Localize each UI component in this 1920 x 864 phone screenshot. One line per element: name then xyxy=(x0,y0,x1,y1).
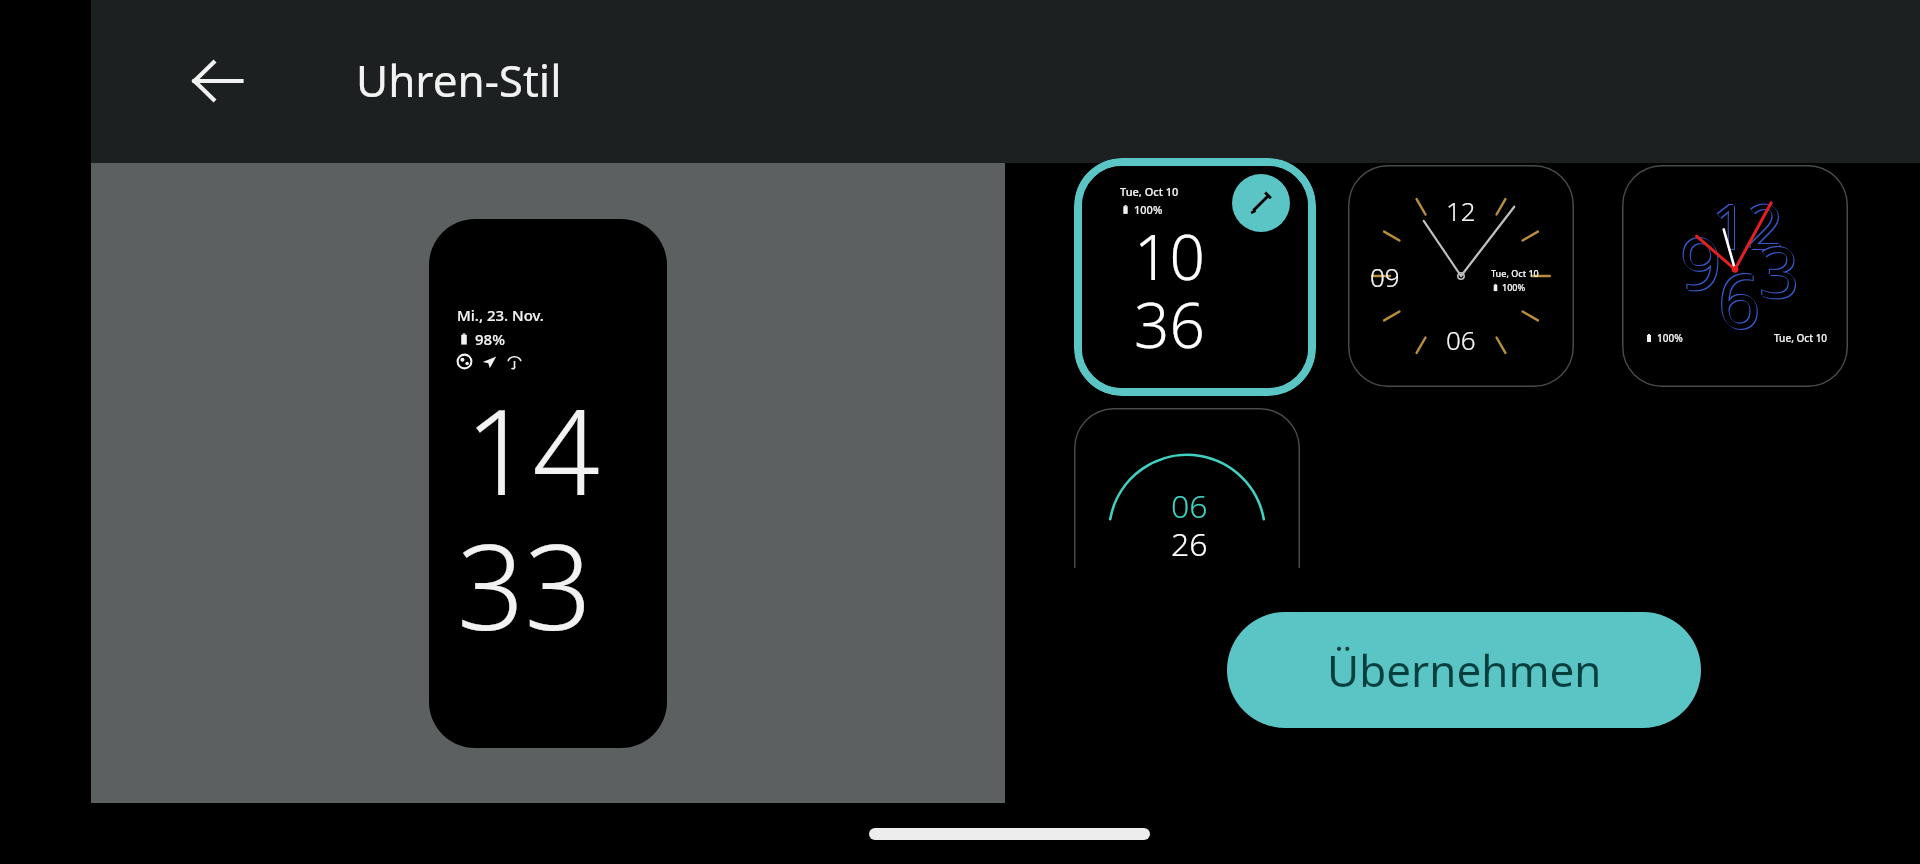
staticText: 14 xyxy=(465,369,600,530)
button[interactable]: Mi., 23. Nov. xyxy=(429,219,667,748)
staticText: 06 xyxy=(1171,484,1208,528)
staticText: 12 xyxy=(1712,183,1783,267)
button[interactable]: 12 xyxy=(1348,165,1574,387)
staticText: 100% xyxy=(1502,281,1526,293)
staticText: Uhren-Stil xyxy=(356,50,562,110)
staticText: 12 xyxy=(1713,184,1784,268)
staticText: Tue, Oct 10 xyxy=(1120,184,1179,199)
staticText: 6 xyxy=(1717,248,1760,349)
staticText: 12 xyxy=(1446,193,1476,228)
staticText: 9 xyxy=(1681,214,1723,312)
staticText: 3 xyxy=(1758,222,1799,317)
staticText: 09 xyxy=(1370,259,1400,294)
button[interactable]: Tue, Oct 10 xyxy=(1074,158,1316,396)
staticText: 6 xyxy=(1719,250,1762,351)
button[interactable]: Bearbeiten xyxy=(1232,174,1290,232)
button[interactable]: Zurück xyxy=(160,23,276,139)
staticText: 98% xyxy=(475,329,505,349)
staticText: 100% xyxy=(1657,331,1683,345)
button[interactable]: 06 xyxy=(1074,408,1300,568)
staticText: Übernehmen xyxy=(1327,640,1602,700)
staticText: 3 xyxy=(1760,224,1801,319)
staticText: 3 xyxy=(1759,223,1800,318)
staticText: Tue, Oct 10 xyxy=(1774,331,1828,345)
staticText: Tue, Oct 10 xyxy=(1491,267,1539,279)
staticText: 26 xyxy=(1171,522,1208,566)
staticText: 6 xyxy=(1718,249,1761,350)
staticText: 9 xyxy=(1680,213,1722,311)
button[interactable]: Übernehmen xyxy=(1227,612,1701,728)
staticText: 06 xyxy=(1446,322,1476,357)
staticText: 33 xyxy=(457,504,592,665)
staticText: 12 xyxy=(1711,182,1782,266)
staticText: 100% xyxy=(1134,202,1163,217)
staticText: 9 xyxy=(1679,212,1721,310)
staticText: Mi., 23. Nov. xyxy=(457,305,544,325)
staticText: 10 xyxy=(1134,214,1205,298)
button[interactable]: 12 xyxy=(1622,165,1848,387)
staticText: 36 xyxy=(1134,282,1205,366)
